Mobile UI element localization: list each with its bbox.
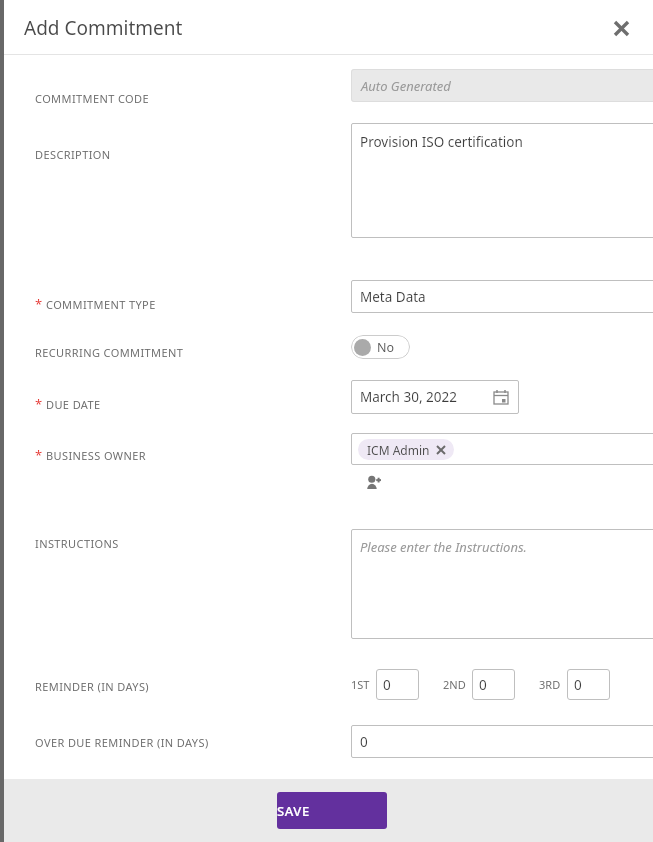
staticText: Add Commitment <box>24 15 183 41</box>
other: Remove ICM Admin <box>437 446 445 454</box>
button[interactable]: Close <box>603 10 639 46</box>
staticText: 0 <box>383 676 391 694</box>
staticText: March 30, 2022 <box>360 388 457 406</box>
staticText: 0 <box>360 733 368 751</box>
button[interactable]: SAVE <box>277 792 387 829</box>
staticText: 0 <box>574 676 582 694</box>
button[interactable]: 0 <box>351 725 653 758</box>
staticText: RECURRING COMMITMENT <box>35 345 184 360</box>
button[interactable]: 0 <box>376 669 419 700</box>
button[interactable]: 0 <box>472 669 515 700</box>
staticText: SAVE <box>277 802 387 820</box>
staticText: ICM Admin <box>367 442 430 458</box>
staticText: Please enter the Instructions. <box>360 538 527 556</box>
staticText: * <box>35 446 43 464</box>
staticText: 0 <box>479 676 487 694</box>
staticText: Meta Data <box>360 288 426 306</box>
button[interactable]: March 30, 2022 <box>351 380 519 414</box>
button[interactable]: Add person <box>359 469 387 497</box>
staticText: BUSINESS OWNER <box>46 448 147 463</box>
button[interactable]: ICM Admin <box>351 433 653 465</box>
staticText: Provision ISO certification <box>360 133 523 151</box>
staticText: COMMITMENT CODE <box>35 91 150 106</box>
staticText: * <box>35 295 43 313</box>
button[interactable]: Provision ISO certification <box>351 123 653 238</box>
staticText: COMMITMENT TYPE <box>46 297 156 312</box>
button[interactable]: ICM Admin <box>367 439 445 460</box>
staticText: DESCRIPTION <box>35 147 111 162</box>
button[interactable]: Auto Generated <box>351 69 653 102</box>
staticText: Auto Generated <box>361 77 451 95</box>
staticText: * <box>35 395 43 413</box>
staticText: INSTRUCTIONS <box>35 536 119 551</box>
staticText: DUE DATE <box>46 397 101 412</box>
staticText: REMINDER (IN DAYS) <box>35 679 150 694</box>
button[interactable]: No <box>351 335 410 359</box>
staticText: OVER DUE REMINDER (IN DAYS) <box>35 735 209 750</box>
staticText: 2ND <box>443 677 466 692</box>
button[interactable]: Meta Data <box>351 280 653 313</box>
button[interactable]: 0 <box>567 669 610 700</box>
button[interactable]: Please enter the Instructions. <box>351 529 653 639</box>
staticText: No <box>377 339 395 356</box>
staticText: 1ST <box>351 677 370 692</box>
staticText: 3RD <box>539 677 561 692</box>
